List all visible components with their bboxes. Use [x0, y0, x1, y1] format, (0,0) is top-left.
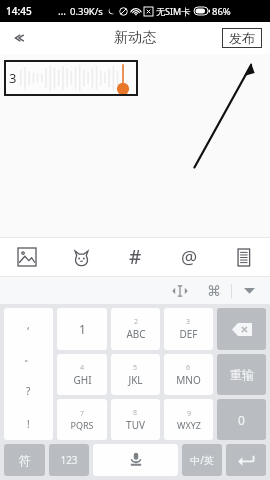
button[interactable]: Enter [226, 444, 266, 476]
button[interactable]: 。 [4, 341, 53, 374]
button[interactable]: 2 [111, 308, 160, 350]
staticText: 无SIM卡 [156, 5, 191, 17]
staticText: PQRS [70, 419, 94, 431]
button[interactable]: 9 [164, 399, 213, 440]
staticText: 86% [212, 5, 231, 18]
staticText: ! [27, 417, 30, 431]
staticText: 3 [9, 69, 17, 87]
button[interactable]: Topic [108, 238, 162, 276]
button[interactable]: Move cursor [163, 277, 197, 304]
button[interactable]: 中/英 [182, 444, 222, 476]
button[interactable]: , [4, 308, 53, 341]
staticText: 14:45 [6, 4, 32, 18]
staticText: 0.39K/s [70, 5, 103, 18]
staticText: 9 [187, 409, 192, 419]
staticText: WXYZ [177, 419, 201, 431]
staticText: ⌘ [207, 283, 221, 299]
button[interactable]: 4 [57, 354, 107, 395]
button[interactable]: Keyboard settings [197, 277, 231, 304]
staticText: ? [26, 384, 31, 398]
staticText: 1 [79, 321, 86, 337]
button[interactable]: 重输 [217, 354, 266, 395]
staticText: ... [58, 4, 67, 18]
button[interactable]: Delete [217, 308, 266, 350]
staticText: MNO [176, 373, 201, 387]
staticText: 。 [24, 351, 34, 364]
button[interactable]: Mention [162, 238, 216, 276]
staticText: GHI [73, 373, 92, 387]
staticText: 7 [80, 409, 85, 419]
staticText: , [27, 318, 30, 332]
button[interactable]: Draft [216, 238, 270, 276]
staticText: 6 [186, 363, 191, 373]
staticText: 中/英 [190, 453, 214, 467]
button[interactable]: 123 [49, 444, 89, 476]
staticText: JKL [128, 373, 143, 387]
staticText: 4 [80, 363, 85, 373]
button[interactable]: Emoji [54, 238, 108, 276]
staticText: 符 [19, 453, 31, 468]
button[interactable]: Hide keyboard [232, 277, 266, 304]
staticText: 5 [133, 363, 138, 373]
button[interactable]: 发布 [222, 28, 262, 48]
staticText: 3 [186, 317, 191, 327]
button[interactable]: Image [0, 238, 54, 276]
staticText: 0 [238, 412, 245, 428]
staticText: 123 [60, 453, 78, 467]
button[interactable]: ! [4, 407, 53, 440]
button[interactable]: Voice input [93, 444, 178, 476]
staticText: TUV [126, 418, 145, 432]
staticText: 8 [133, 408, 138, 418]
staticText: ABC [126, 327, 146, 341]
button[interactable]: Back [0, 22, 36, 54]
button[interactable]: 1 [57, 308, 107, 350]
staticText: 重输 [230, 367, 254, 382]
button[interactable]: 7 [57, 399, 107, 440]
staticText: 新动态 [114, 29, 156, 47]
staticText: 发布 [229, 30, 255, 46]
button[interactable]: 8 [111, 399, 160, 440]
staticText: 2 [134, 317, 139, 327]
button[interactable]: 3 [4, 60, 138, 96]
button[interactable]: 6 [164, 354, 213, 395]
button[interactable]: 符 [4, 444, 45, 476]
button[interactable]: ? [4, 374, 53, 407]
staticText: DEF [179, 327, 198, 341]
button[interactable]: 3 [164, 308, 213, 350]
button[interactable]: 0 [217, 399, 266, 440]
staticText: @ [181, 245, 198, 270]
staticText: # [129, 244, 142, 270]
button[interactable]: 5 [111, 354, 160, 395]
